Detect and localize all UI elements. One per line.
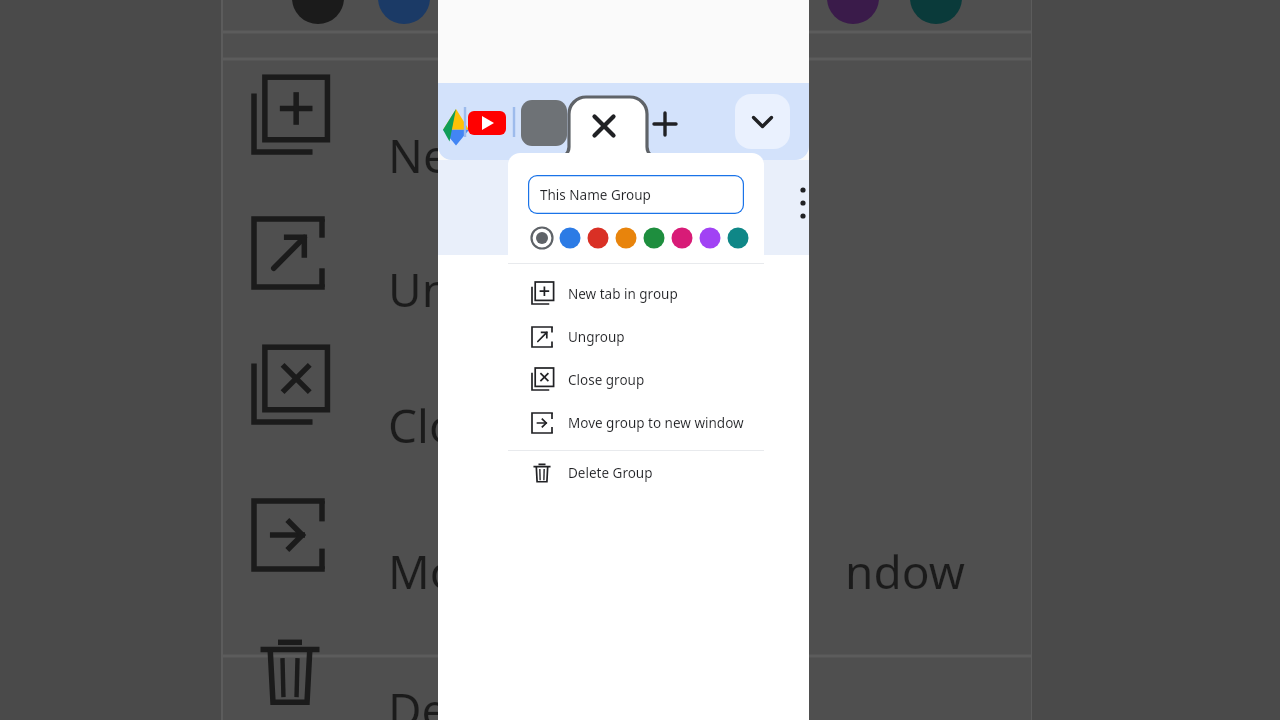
button[interactable]: Cyan — [726, 226, 750, 250]
staticText: Delete Group — [568, 464, 653, 482]
button[interactable]: This Name Group — [528, 175, 744, 214]
button[interactable]: Close tab — [586, 108, 622, 144]
staticText: Mo — [388, 540, 458, 603]
staticText: ndow — [845, 540, 965, 603]
button[interactable]: Pink — [670, 226, 694, 250]
staticText: Ungroup — [568, 328, 625, 346]
button[interactable]: Close group — [508, 358, 764, 401]
button[interactable]: New tab in group — [508, 272, 764, 315]
button[interactable]: New tab — [646, 105, 684, 143]
staticText: Move group to new window — [568, 414, 744, 432]
button[interactable]: Red — [586, 226, 610, 250]
button[interactable]: Move group to new window — [508, 401, 764, 444]
button[interactable]: Delete Group — [508, 451, 764, 495]
button[interactable]: Green — [642, 226, 666, 250]
staticText: This Name Group — [540, 186, 651, 204]
staticText: New tab in group — [568, 285, 678, 303]
staticText: Clo — [388, 394, 457, 457]
staticText: Ne — [388, 124, 449, 187]
button[interactable]: More options — [786, 186, 820, 220]
button[interactable]: Expand tabs — [735, 94, 790, 149]
button[interactable]: Grey, selected — [530, 226, 554, 250]
button[interactable]: Orange — [614, 226, 638, 250]
button[interactable]: Blue — [558, 226, 582, 250]
staticText: Un — [388, 258, 451, 321]
button[interactable]: Purple — [698, 226, 722, 250]
button[interactable]: Ungroup — [508, 315, 764, 358]
staticText: De — [388, 678, 448, 720]
staticText: Close group — [568, 371, 645, 389]
button[interactable]: Bookmark — [512, 180, 556, 224]
